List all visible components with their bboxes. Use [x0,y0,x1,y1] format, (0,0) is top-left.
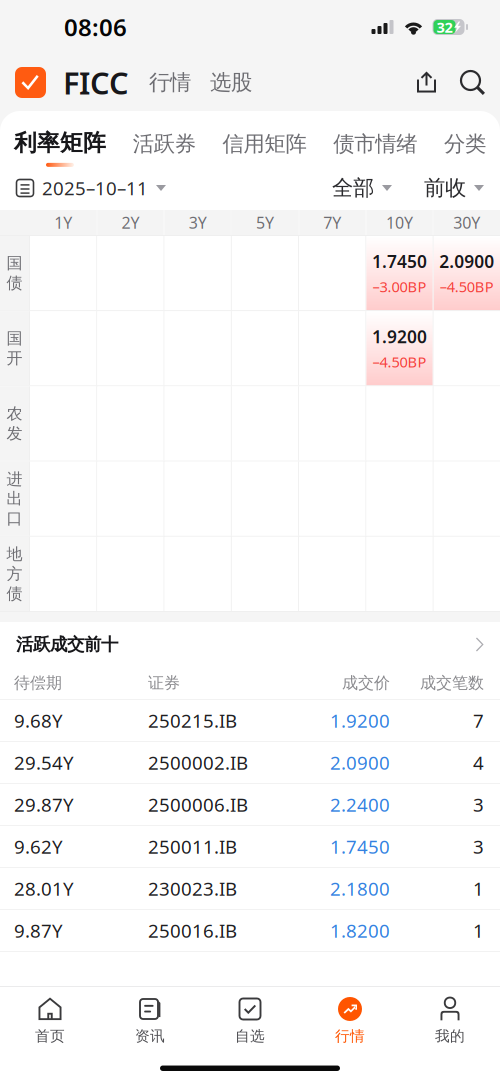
staticText: 5Y [256,212,274,233]
staticText: 2Y [121,212,139,233]
staticText: 2500006.IB [148,792,248,817]
staticText: 利率矩阵 [14,129,106,157]
staticText: 3 [473,834,484,859]
staticText: 7Y [323,212,341,233]
button[interactable]: 利率矩阵 [14,129,106,167]
staticText: 2025–10–11 [42,176,148,200]
staticText: 债市情绪 [333,131,417,157]
button[interactable]: 活跃券 [133,131,196,165]
button[interactable]: 选股 [210,69,252,96]
staticText: 2.1800 [330,876,390,901]
staticText: 250215.IB [148,708,237,733]
button[interactable]: 我的 [400,987,500,1049]
button[interactable]: 前收 [424,175,484,201]
staticText: 1.7450 [330,834,390,859]
staticText: 9.62Y [14,834,63,859]
button[interactable]: 首页 [0,987,100,1049]
staticText: 08:06 [64,11,127,43]
button[interactable]: Share [416,71,438,94]
staticText: –4.50BP [373,352,427,372]
staticText: 2.0900 [439,250,494,273]
staticText: –4.50BP [440,277,494,296]
staticText: 国债 [6,253,22,293]
staticText: 自选 [235,1027,265,1045]
staticText: 250016.IB [148,918,237,943]
staticText: 4 [473,750,484,775]
staticText: 行情 [149,69,191,96]
staticText: 2500002.IB [148,750,248,775]
staticText: 资讯 [135,1027,165,1045]
staticText: 我的 [435,1027,465,1045]
button[interactable]: 自选 [200,987,300,1049]
button[interactable]: 全部 [332,175,392,201]
staticText: 1 [473,876,484,901]
staticText: 28.01Y [14,876,74,901]
staticText: 1.9200 [330,708,390,733]
staticText: 1.7450 [372,250,427,273]
button[interactable]: 分类 [444,131,486,165]
button[interactable]: 资讯 [100,987,200,1049]
staticText: 1.9200 [372,325,427,348]
staticText: 2.0900 [330,750,390,775]
staticText: 250011.IB [148,834,237,859]
staticText: FICC [63,62,129,103]
staticText: 地方债 [6,544,22,603]
staticText: 成交笔数 [420,673,484,693]
staticText: 全部 [332,175,374,201]
staticText: 29.54Y [14,750,74,775]
staticText: 7 [473,708,484,733]
staticText: 成交价 [342,673,390,693]
staticText: 1Y [54,212,72,233]
button[interactable]: 行情 [300,987,400,1049]
staticText: 32 [436,17,452,37]
button[interactable]: 债市情绪 [333,131,417,165]
staticText: 9.68Y [14,708,63,733]
staticText: 首页 [35,1027,65,1045]
button[interactable]: Search [460,70,485,95]
staticText: 证券 [148,673,180,693]
staticText: 1.8200 [330,918,390,943]
staticText: 230023.IB [148,876,237,901]
button[interactable]: 活跃成交前十 [0,622,500,667]
staticText: 待偿期 [14,673,62,693]
staticText: 29.87Y [14,792,74,817]
staticText: 前收 [424,175,466,201]
button[interactable]: 2025–10–11 [16,176,166,200]
staticText: 分类 [444,131,486,157]
staticText: 农发 [6,404,22,443]
staticText: 10Y [386,212,413,233]
staticText: 3 [473,792,484,817]
staticText: 信用矩阵 [222,131,306,157]
staticText: 进出口 [6,469,22,528]
button[interactable]: 行情 [149,69,191,96]
staticText: 活跃券 [133,131,196,157]
staticText: 活跃成交前十 [16,634,118,655]
staticText: 国开 [6,329,22,368]
staticText: 30Y [453,212,480,233]
staticText: 3Y [189,212,207,233]
staticText: 行情 [335,1027,365,1045]
button[interactable]: 信用矩阵 [222,131,306,165]
staticText: 1 [473,918,484,943]
staticText: 9.87Y [14,918,63,943]
staticText: 选股 [210,69,252,96]
staticText: –3.00BP [373,277,427,296]
staticText: 2.2400 [330,792,390,817]
